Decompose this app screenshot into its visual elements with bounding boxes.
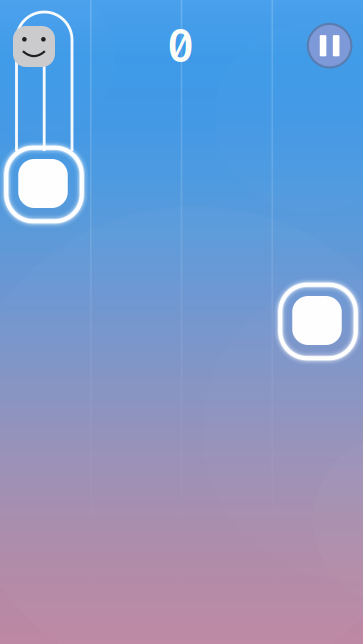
button[interactable]: Pause — [305, 21, 355, 71]
staticText: 0 — [167, 21, 194, 75]
